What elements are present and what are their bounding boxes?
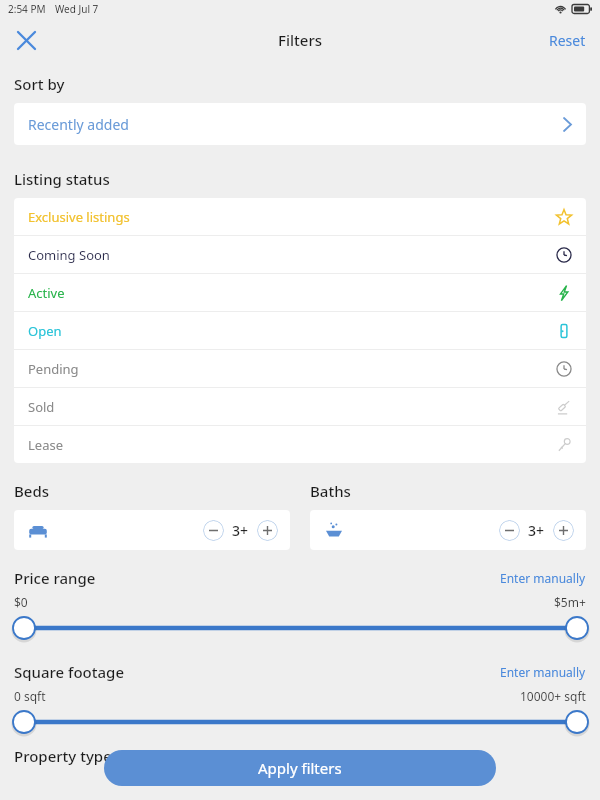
staticText: Pending xyxy=(28,360,79,378)
staticText: Coming Soon xyxy=(28,246,110,264)
staticText: Active xyxy=(28,284,65,302)
button[interactable]: Open xyxy=(14,312,586,349)
staticText: Wed Jul 7 xyxy=(55,2,99,16)
staticText: 3+ xyxy=(232,521,249,540)
staticText: 0 sqft xyxy=(14,688,46,704)
button[interactable]: Increase Baths xyxy=(553,520,574,541)
staticText: Baths xyxy=(310,481,351,501)
button[interactable]: Lease xyxy=(14,426,586,463)
button[interactable]: Reset xyxy=(541,25,594,56)
staticText: $0 xyxy=(14,594,28,610)
staticText: 3+ xyxy=(528,521,545,540)
button[interactable]: Decrease Baths xyxy=(499,520,520,541)
button[interactable]: Pending xyxy=(14,350,586,387)
staticText: Exclusive listings xyxy=(28,208,130,226)
staticText: Sort by xyxy=(14,74,65,94)
button[interactable]: Coming Soon xyxy=(14,236,586,273)
staticText: 10000+ sqft xyxy=(520,688,586,704)
staticText: Listing status xyxy=(14,169,110,189)
staticText: $5m+ xyxy=(554,594,586,610)
button[interactable]: Square footage slider xyxy=(0,710,600,734)
button[interactable]: Enter manually xyxy=(500,566,586,590)
staticText: Reset xyxy=(549,31,586,50)
staticText: Sold xyxy=(28,398,55,416)
staticText: Lease xyxy=(28,436,63,454)
staticText: Price range xyxy=(14,568,96,588)
button[interactable]: Price range slider xyxy=(0,616,600,640)
staticText: Filters xyxy=(278,30,323,50)
button[interactable]: Sold xyxy=(14,388,586,425)
button[interactable]: Enter manually xyxy=(500,660,586,684)
button[interactable]: Active xyxy=(14,274,586,311)
button[interactable]: Recently added xyxy=(14,103,586,145)
button[interactable]: Apply filters xyxy=(104,750,496,786)
button[interactable]: Decrease Beds xyxy=(203,520,224,541)
staticText: Recently added xyxy=(28,115,129,134)
staticText: Square footage xyxy=(14,662,125,682)
button[interactable]: Exclusive listings xyxy=(14,198,586,235)
staticText: Open xyxy=(28,322,62,340)
button[interactable]: Close xyxy=(9,23,43,57)
staticText: Enter manually xyxy=(500,570,586,586)
staticText: Enter manually xyxy=(500,664,586,680)
staticText: Beds xyxy=(14,481,50,501)
staticText: Apply filters xyxy=(258,758,342,778)
staticText: Property type xyxy=(14,746,112,766)
staticText: 2:54 PM xyxy=(8,2,46,16)
button[interactable]: Increase Beds xyxy=(257,520,278,541)
